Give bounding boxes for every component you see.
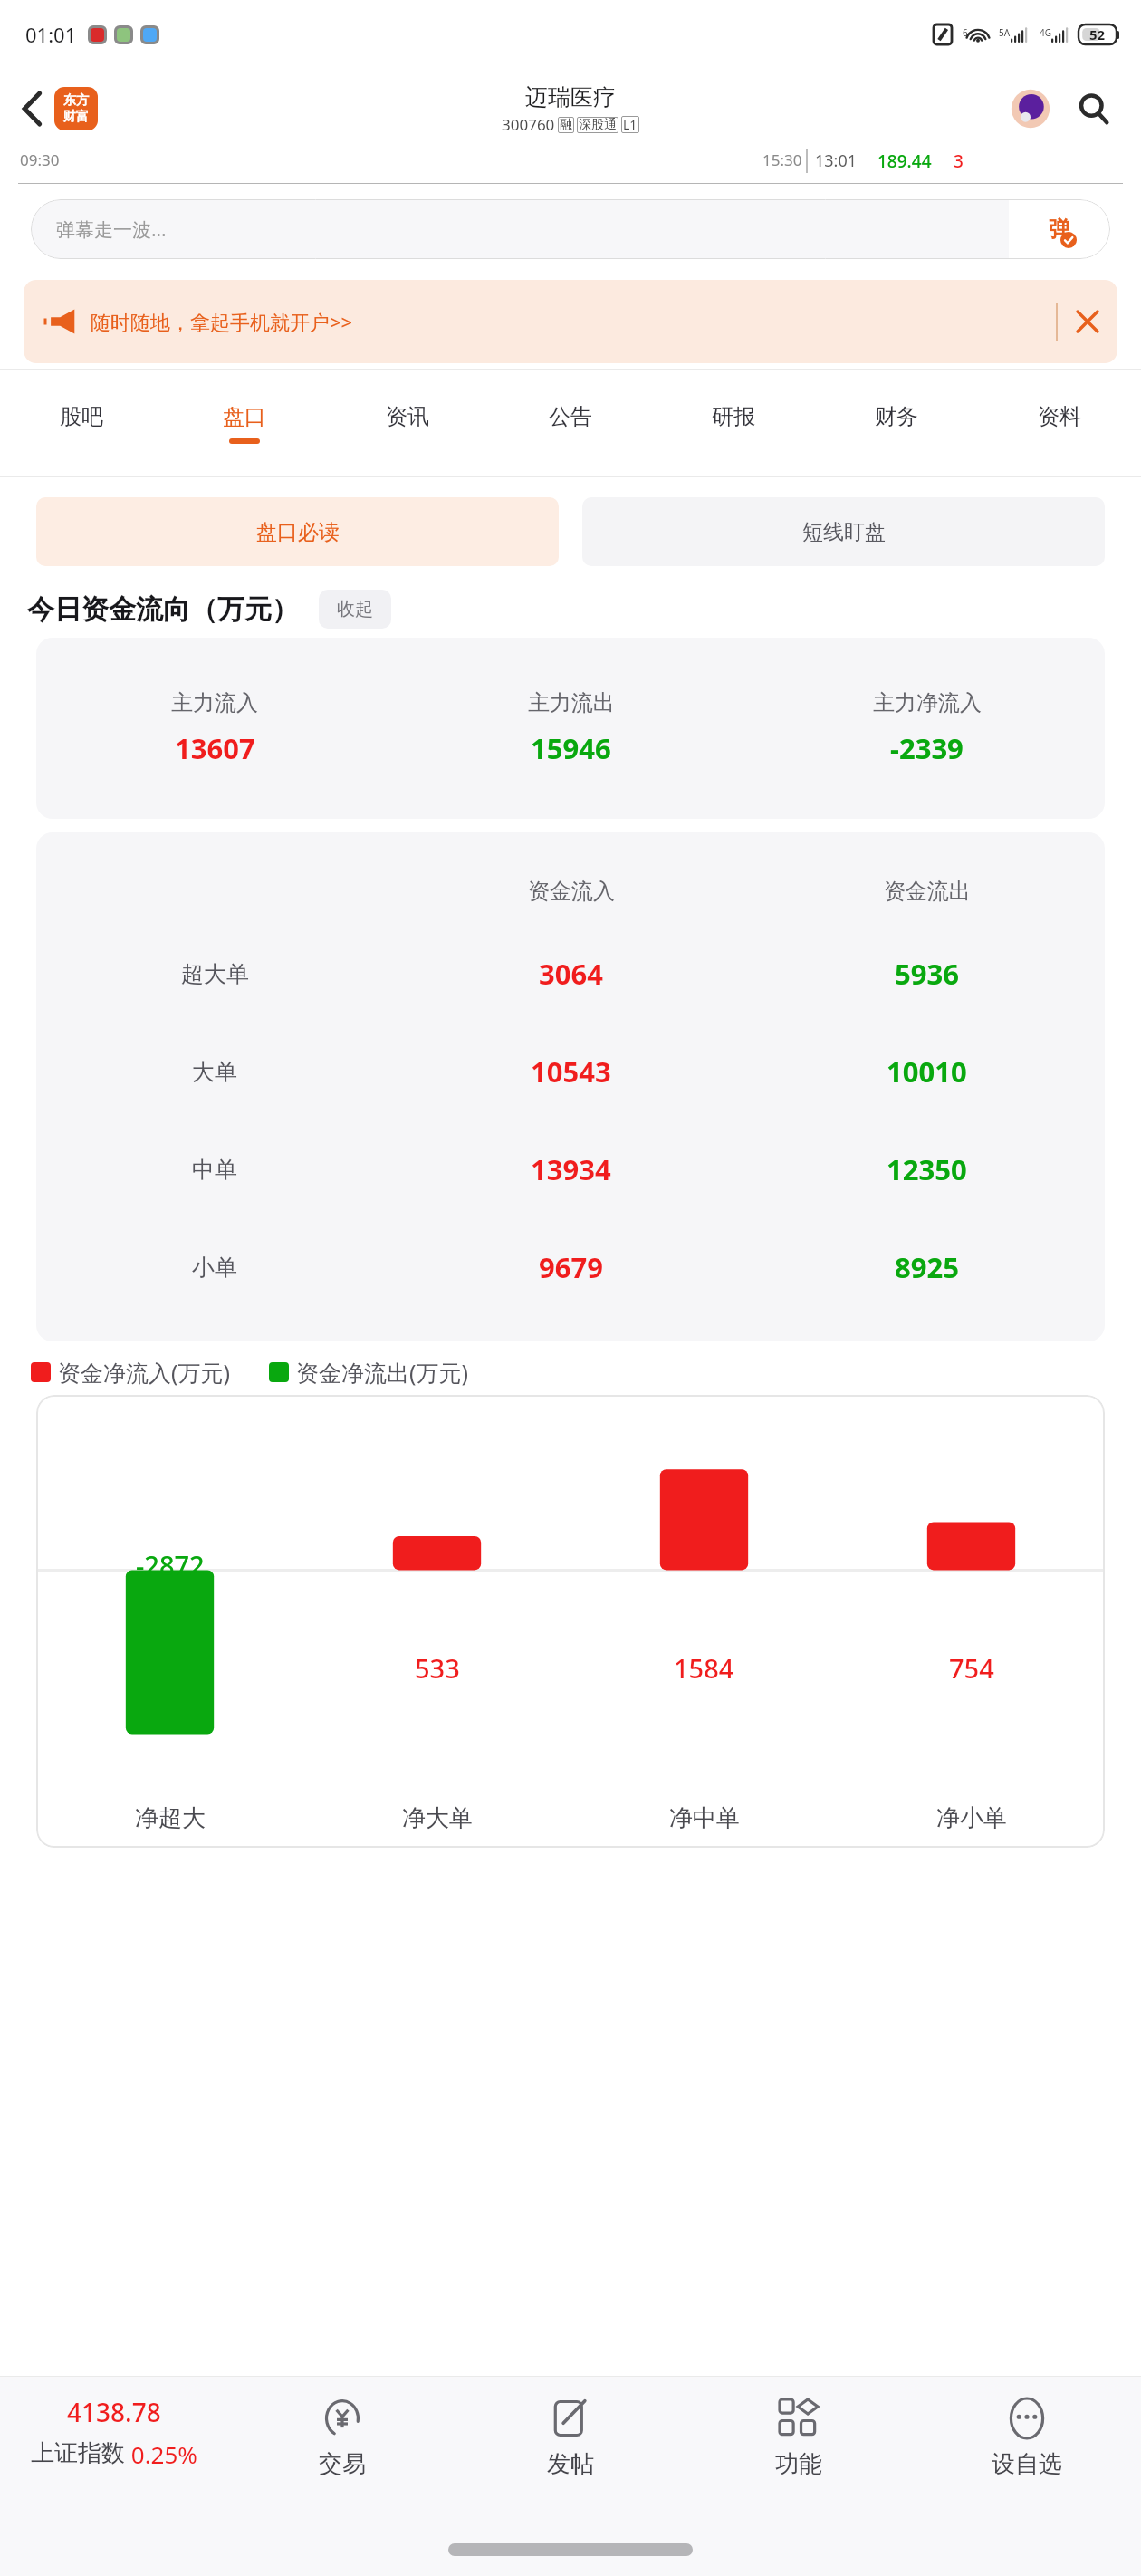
staticText: 小单 — [192, 1254, 237, 1282]
staticText: 短线盯盘 — [802, 519, 886, 545]
staticText: 超大单 — [181, 960, 249, 988]
staticText: 弹 — [1049, 216, 1070, 243]
staticText: 3064 — [539, 955, 603, 993]
staticText: 资金流出 — [884, 878, 971, 905]
button[interactable]: 关闭 — [1058, 280, 1117, 363]
staticText: 东方 — [63, 92, 89, 109]
button[interactable]: AI助手 — [1007, 85, 1054, 132]
staticText: L1 — [623, 116, 638, 133]
staticText: 6 — [963, 26, 968, 39]
button[interactable]: 研报 — [652, 370, 815, 476]
staticText: 12350 — [887, 1150, 967, 1188]
staticText: -2339 — [890, 729, 964, 767]
button[interactable]: 设自选 — [913, 2395, 1141, 2479]
other: 公告 — [45, 308, 76, 335]
button[interactable]: 资料 — [978, 370, 1141, 476]
staticText: 资金净流入(万元) — [58, 1357, 231, 1388]
button[interactable]: 资讯 — [326, 370, 489, 476]
staticText: 533 — [415, 1650, 460, 1686]
staticText: 主力流出 — [528, 689, 615, 716]
button[interactable]: 4138.78 — [0, 2395, 228, 2470]
staticText: 中单 — [192, 1156, 237, 1184]
staticText: 研报 — [712, 403, 755, 430]
staticText: 交易 — [319, 2449, 366, 2479]
staticText: 净大单 — [402, 1803, 473, 1833]
staticText: 净超大 — [135, 1803, 206, 1833]
staticText: 10543 — [531, 1053, 611, 1091]
staticText: 资讯 — [386, 403, 429, 430]
staticText: 15946 — [531, 729, 611, 767]
button[interactable]: 公告 — [24, 280, 1117, 363]
staticText: 300760 — [502, 114, 555, 135]
staticText: 13607 — [175, 729, 255, 767]
staticText: 公告 — [549, 403, 592, 430]
staticText: 资金流入 — [528, 878, 615, 905]
staticText: 09:30 — [20, 149, 60, 170]
button[interactable]: 功能 — [685, 2395, 913, 2479]
staticText: 主力流入 — [171, 689, 258, 716]
staticText: 189.44 — [877, 149, 932, 173]
staticText: 收起 — [337, 598, 373, 620]
staticText: 15:30 — [762, 149, 802, 170]
staticText: 5A — [999, 26, 1011, 39]
button[interactable]: Back — [7, 83, 58, 134]
staticText: 13934 — [531, 1150, 611, 1188]
staticText: 01:01 — [25, 21, 77, 48]
staticText: 财务 — [875, 403, 918, 430]
staticText: 盘口 — [223, 403, 266, 430]
staticText: 9679 — [539, 1248, 603, 1286]
staticText: 资金净流出(万元) — [296, 1357, 469, 1388]
button[interactable]: 小单 — [36, 1218, 1105, 1316]
staticText: 13:01 — [815, 149, 858, 172]
staticText: 5936 — [895, 955, 959, 993]
button[interactable]: 公告 — [489, 370, 652, 476]
button[interactable]: 短线盯盘 — [582, 497, 1105, 566]
staticText: 财富 — [63, 109, 89, 125]
staticText: 净中单 — [669, 1803, 740, 1833]
staticText: 盘口必读 — [256, 519, 340, 545]
button[interactable]: 收起 — [319, 590, 391, 629]
staticText: 发帖 — [547, 2449, 594, 2479]
staticText: 深股通 — [579, 117, 617, 133]
staticText: -2872 — [136, 1547, 205, 1582]
staticText: 主力净流入 — [873, 689, 982, 716]
staticText: 上证指数 — [31, 2438, 125, 2468]
button[interactable]: 主力流入 — [36, 638, 1105, 819]
button[interactable]: 中单 — [36, 1120, 1105, 1218]
button[interactable]: 交易 — [228, 2395, 456, 2479]
staticText: 4G — [1040, 26, 1051, 39]
button[interactable]: 大单 — [36, 1023, 1105, 1120]
button[interactable]: 东方财富 — [54, 87, 98, 130]
staticText: 净小单 — [936, 1803, 1007, 1833]
button[interactable]: 财务 — [815, 370, 978, 476]
staticText: 52 — [1089, 25, 1106, 43]
staticText: 1584 — [674, 1650, 734, 1686]
button[interactable]: 弹幕走一波… — [31, 199, 1110, 259]
staticText: 资料 — [1038, 403, 1081, 430]
button[interactable]: Search — [1070, 85, 1117, 132]
staticText: 10010 — [887, 1053, 967, 1091]
staticText: 设自选 — [992, 2449, 1062, 2479]
staticText: 功能 — [775, 2449, 822, 2479]
button[interactable]: 超大单 — [36, 925, 1105, 1023]
button[interactable]: 盘口必读 — [36, 497, 559, 566]
staticText: 随时随地，拿起手机就开户>> — [91, 308, 353, 335]
staticText: 股吧 — [60, 403, 103, 430]
staticText: 8925 — [895, 1248, 959, 1286]
staticText: 大单 — [192, 1058, 237, 1086]
button[interactable]: 盘口 — [163, 370, 326, 476]
staticText: 弹幕走一波… — [56, 216, 167, 243]
staticText: 迈瑞医疗 — [525, 83, 616, 111]
staticText: 0.25% — [125, 2438, 197, 2470]
button[interactable]: 发帖 — [456, 2395, 685, 2479]
staticText: 融 — [560, 117, 572, 133]
staticText: 今日资金流向（万元） — [27, 592, 299, 627]
staticText: 3 — [954, 149, 964, 173]
button[interactable]: 股吧 — [0, 370, 163, 476]
staticText: 4138.78 — [67, 2395, 161, 2429]
staticText: 754 — [949, 1650, 994, 1686]
